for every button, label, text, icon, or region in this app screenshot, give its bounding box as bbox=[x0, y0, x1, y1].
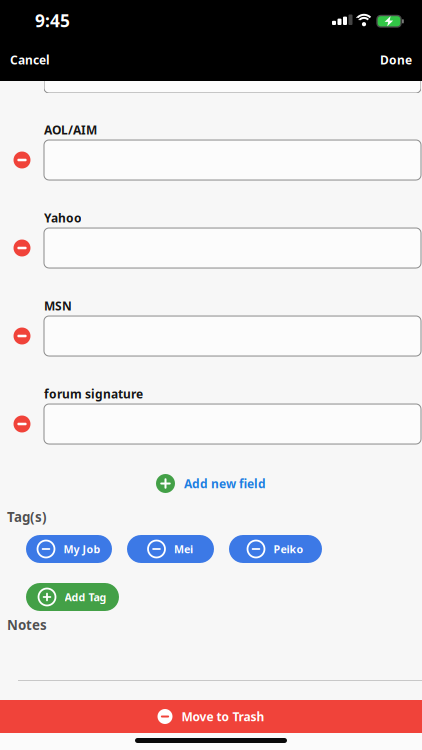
staticText: AOL/AIM bbox=[44, 122, 97, 138]
staticText: MSN bbox=[44, 298, 72, 314]
button[interactable]: forum signature text field bbox=[44, 404, 421, 444]
staticText: Yahoo bbox=[44, 210, 82, 226]
button[interactable]: Done bbox=[380, 52, 412, 68]
staticText: Peiko bbox=[273, 542, 303, 556]
button[interactable]: Add Tag bbox=[26, 583, 119, 611]
button[interactable]: Delete AOL/AIM bbox=[13, 151, 30, 168]
button[interactable]: Move to Trash bbox=[0, 700, 422, 733]
button[interactable]: My Job bbox=[26, 535, 112, 563]
button[interactable]: Delete MSN bbox=[13, 327, 30, 344]
button[interactable]: AOL/AIM text field bbox=[44, 140, 421, 180]
button[interactable]: Peiko bbox=[229, 535, 322, 563]
staticText: Done bbox=[380, 52, 412, 68]
staticText: Move to Trash bbox=[181, 708, 264, 724]
staticText: My Job bbox=[63, 542, 100, 556]
button[interactable]: Add new field bbox=[156, 474, 266, 493]
button[interactable]: Yahoo text field bbox=[44, 228, 421, 268]
staticText: Notes bbox=[7, 616, 47, 634]
button[interactable]: Delete Yahoo bbox=[13, 239, 30, 256]
button[interactable]: Cancel bbox=[10, 52, 50, 68]
button[interactable]: Mei bbox=[127, 535, 214, 563]
staticText: Tag(s) bbox=[7, 508, 47, 526]
button[interactable]: Delete forum signature bbox=[13, 415, 30, 432]
staticText: forum signature bbox=[44, 386, 143, 402]
staticText: 9:45 bbox=[35, 9, 70, 32]
staticText: Mei bbox=[174, 542, 193, 556]
staticText: Cancel bbox=[10, 52, 50, 68]
button[interactable]: MSN text field bbox=[44, 316, 421, 356]
staticText: Add new field bbox=[184, 475, 266, 491]
staticText: Add Tag bbox=[64, 590, 106, 604]
